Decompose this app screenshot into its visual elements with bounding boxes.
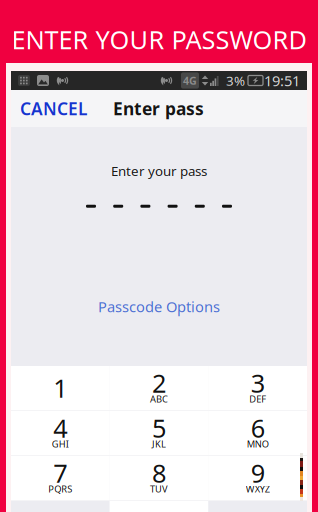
staticText: 9 xyxy=(251,456,265,490)
button[interactable]: 7 xyxy=(11,456,110,500)
staticText: 1 xyxy=(53,371,67,405)
staticText: Enter your pass xyxy=(111,162,207,180)
button[interactable]: 6 xyxy=(208,411,307,455)
staticText: JKL xyxy=(152,438,166,450)
staticText: 8 xyxy=(152,456,166,490)
staticText: 19:51 xyxy=(264,71,300,90)
staticText: 3 xyxy=(251,366,265,400)
button[interactable]: 8 xyxy=(110,456,208,500)
button[interactable]: 4 xyxy=(11,411,110,455)
button[interactable]: 3 xyxy=(208,366,307,410)
button[interactable]: 1 xyxy=(11,366,110,410)
button[interactable]: 9 xyxy=(208,456,307,500)
staticText: MNO xyxy=(247,438,269,450)
staticText: PQRS xyxy=(48,483,72,495)
staticText: 2 xyxy=(152,366,166,400)
staticText: ENTER YOUR PASSWORD xyxy=(11,23,306,56)
staticText: 4G xyxy=(183,73,197,88)
button[interactable]: Passcode Options xyxy=(98,297,220,316)
staticText: Passcode Options xyxy=(98,297,220,316)
button[interactable]: 5 xyxy=(110,411,208,455)
staticText: Enter pass xyxy=(113,97,204,120)
button[interactable]: CANCEL xyxy=(20,90,87,127)
staticText: WXYZ xyxy=(246,483,270,495)
staticText: 7 xyxy=(53,456,67,490)
staticText: CANCEL xyxy=(20,97,87,120)
staticText: DEF xyxy=(249,393,266,405)
staticText: 4 xyxy=(53,411,67,445)
staticText: 3% xyxy=(226,72,245,89)
staticText: TUV xyxy=(150,483,168,495)
button[interactable]: 2 xyxy=(110,366,208,410)
staticText: 6 xyxy=(251,411,265,445)
staticText: GHI xyxy=(52,438,69,450)
staticText: ABC xyxy=(150,393,168,405)
staticText: 5 xyxy=(152,411,166,445)
